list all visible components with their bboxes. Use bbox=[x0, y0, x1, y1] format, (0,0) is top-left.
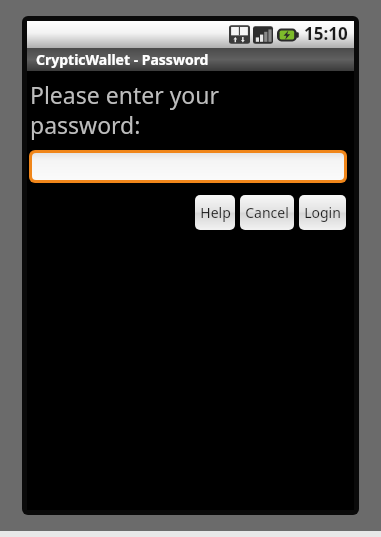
staticText: Please enter your password: bbox=[30, 79, 324, 140]
button[interactable]: Cancel bbox=[240, 195, 294, 230]
staticText: CrypticWallet - Password bbox=[36, 50, 209, 69]
staticText: 15:10 bbox=[304, 22, 348, 45]
button[interactable] bbox=[29, 150, 347, 183]
button[interactable]: Help bbox=[195, 195, 235, 230]
staticText: Cancel bbox=[245, 203, 289, 222]
button[interactable]: Login bbox=[299, 195, 346, 230]
staticText: Help bbox=[200, 203, 231, 222]
staticText: Login bbox=[304, 203, 341, 222]
